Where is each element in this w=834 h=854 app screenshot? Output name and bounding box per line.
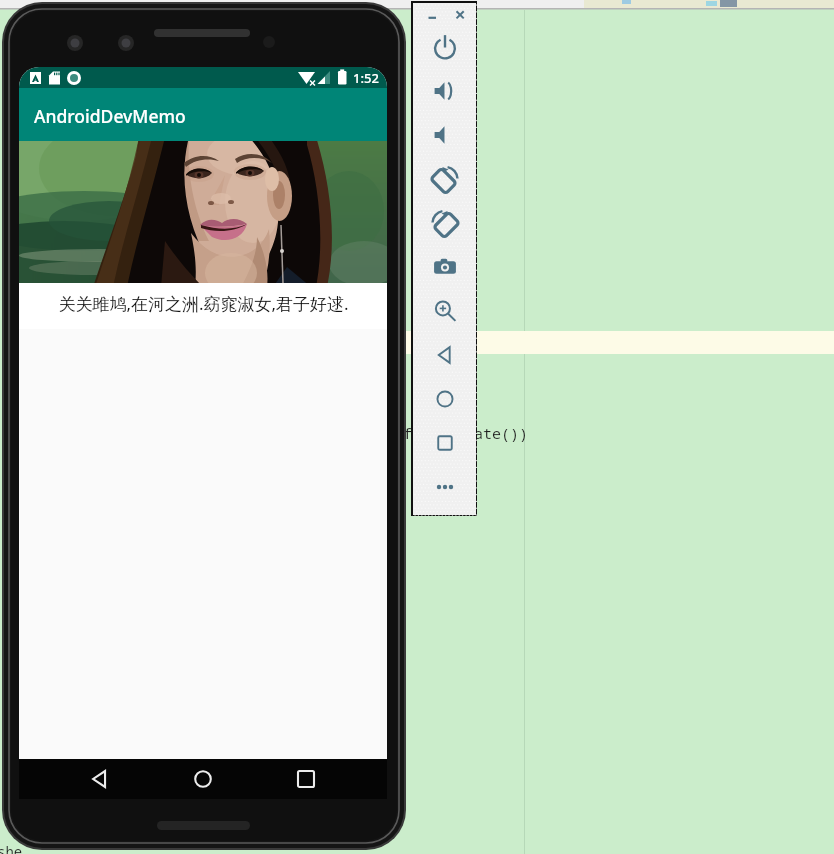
button[interactable]: Volume up xyxy=(414,69,476,113)
button[interactable]: Rotate right xyxy=(414,201,476,245)
staticText: 1:52 xyxy=(353,69,379,87)
staticText: AndroidDevMemo xyxy=(34,104,186,128)
button[interactable]: Close xyxy=(451,6,469,24)
button[interactable]: Take screenshot xyxy=(414,245,476,289)
button[interactable]: Home xyxy=(414,377,476,421)
button[interactable]: Recents xyxy=(284,759,328,799)
button[interactable]: Volume down xyxy=(414,113,476,157)
staticText: f xyxy=(403,423,413,443)
button[interactable]: Overview xyxy=(414,421,476,465)
button[interactable]: Rotate left xyxy=(414,157,476,201)
button[interactable]: More xyxy=(414,465,476,509)
staticText: ate()) xyxy=(474,423,529,443)
staticText: 关关雎鸠,在河之洲.窈窕淑女,君子好逑. xyxy=(58,292,349,315)
button[interactable]: Back xyxy=(414,333,476,377)
button[interactable]: Back xyxy=(78,759,122,799)
button[interactable]: Home xyxy=(181,759,225,799)
staticText: she xyxy=(0,842,23,854)
button[interactable]: Minimize xyxy=(423,7,441,25)
button[interactable]: Power xyxy=(414,25,476,69)
button[interactable]: Zoom xyxy=(414,289,476,333)
